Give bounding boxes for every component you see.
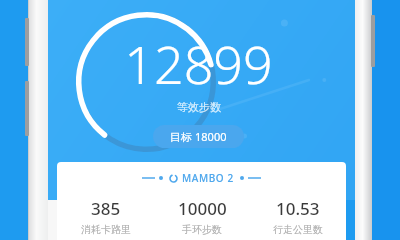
staticText: 手环步数 [182, 223, 222, 236]
button[interactable]: 10000 [154, 197, 250, 236]
staticText: 18000 [195, 129, 227, 144]
staticText: 385 [91, 197, 121, 220]
other: MAMBO 2 device [142, 171, 261, 185]
staticText: MAMBO 2 [182, 171, 234, 185]
staticText: 目标 [170, 130, 192, 144]
button[interactable]: 10.53 [250, 197, 346, 236]
button[interactable]: 385 [57, 197, 154, 236]
staticText: 消耗卡路里 [81, 223, 131, 236]
staticText: 10.53 [276, 197, 320, 220]
staticText: 10000 [178, 197, 227, 220]
button[interactable]: MAMBO 2 device [57, 162, 346, 240]
button[interactable]: 目标 [153, 125, 244, 148]
staticText: 12899 [124, 28, 273, 99]
staticText: 等效步数 [177, 100, 221, 114]
staticText: 行走公里数 [273, 223, 323, 236]
